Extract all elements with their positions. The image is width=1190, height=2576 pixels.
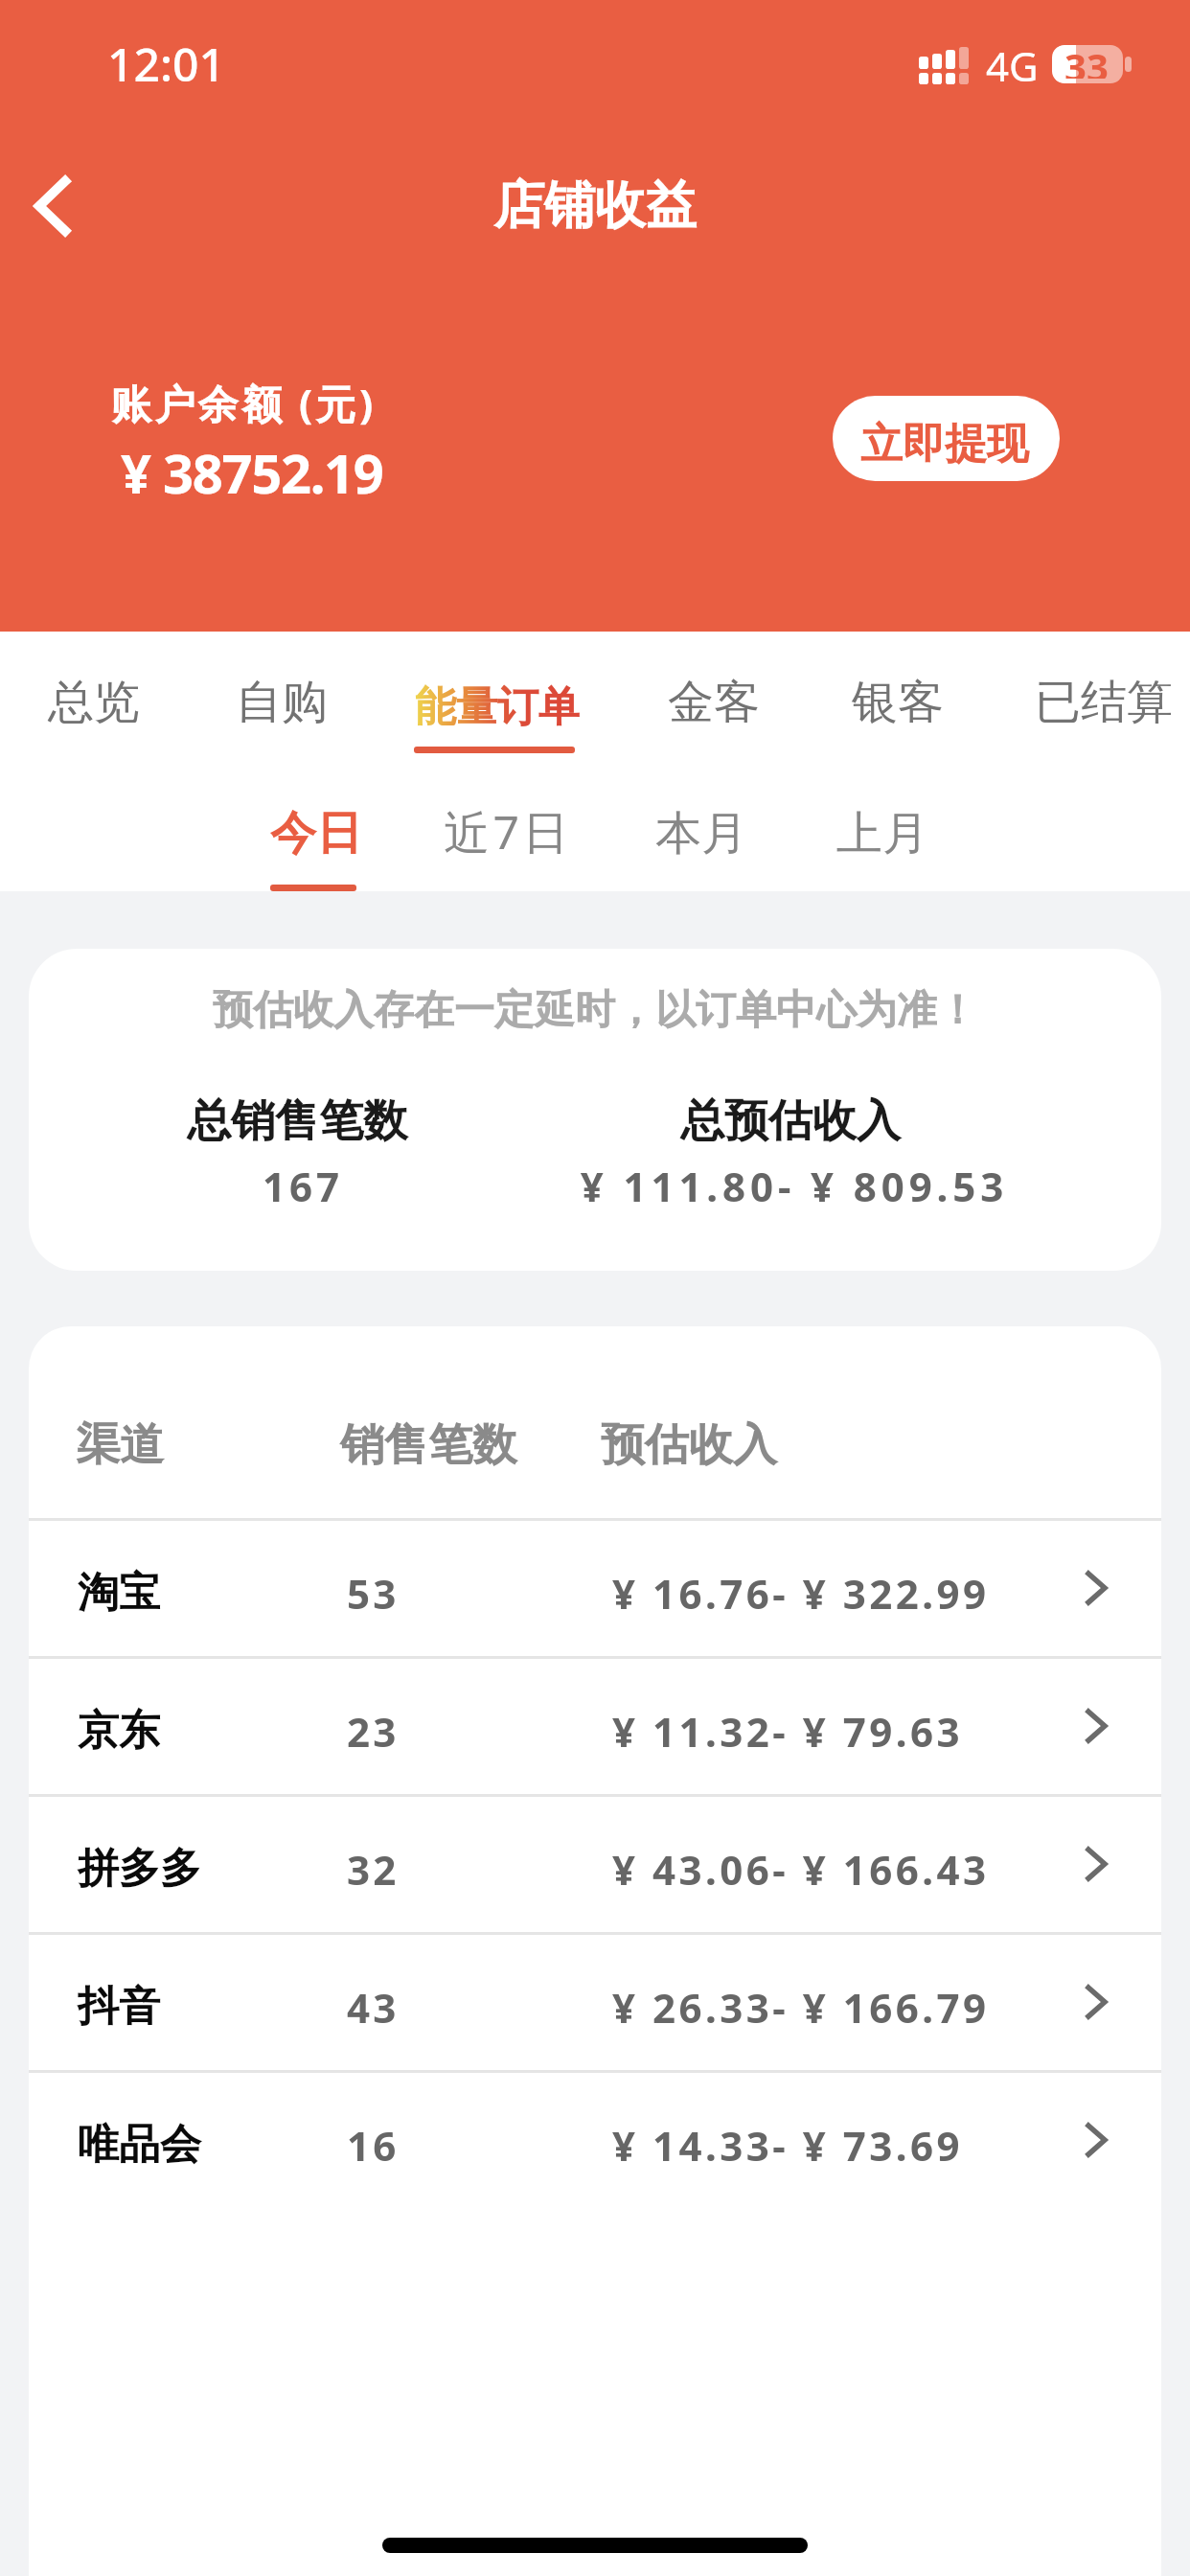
button[interactable]: 今日 <box>255 770 370 891</box>
staticText: ¥ 111.80- ¥ 809.53 <box>424 1159 1161 1213</box>
staticText: 京东 <box>78 1705 160 1757</box>
staticText: 12:01 <box>107 33 225 95</box>
button[interactable]: 本月 <box>640 770 751 891</box>
staticText: 店铺收益 <box>0 173 1190 238</box>
staticText: 上月 <box>836 805 928 862</box>
staticText: 33 <box>1064 45 1109 79</box>
staticText: 本月 <box>655 805 747 862</box>
staticText: 近7日 <box>444 800 572 863</box>
button[interactable]: 已结算 <box>1026 641 1176 761</box>
staticText: 53 <box>347 1566 400 1621</box>
staticText: 金客 <box>668 674 760 731</box>
button[interactable]: 京东 <box>29 1657 1161 1795</box>
staticText: 16 <box>347 2118 400 2173</box>
staticText: 已结算 <box>1035 674 1173 731</box>
button[interactable]: 抖音 <box>29 1933 1161 2071</box>
button[interactable]: 能量订单 <box>398 641 591 761</box>
staticText: 预估收入 <box>601 1417 777 1473</box>
staticText: 23 <box>347 1704 400 1759</box>
staticText: 立即提现 <box>860 418 1029 471</box>
staticText: 32 <box>347 1842 400 1897</box>
staticText: 唯品会 <box>78 2119 201 2171</box>
button[interactable]: 金客 <box>659 641 767 761</box>
staticText: 4G <box>986 38 1039 93</box>
staticText: 渠道 <box>76 1417 164 1473</box>
button[interactable]: 银客 <box>843 641 950 761</box>
button[interactable]: Back <box>6 160 98 252</box>
staticText: 淘宝 <box>78 1567 160 1619</box>
staticText: ¥ 14.33- ¥ 73.69 <box>612 2118 964 2173</box>
staticText: 账户余额 (元) <box>111 376 377 430</box>
staticText: 总销售笔数 <box>29 1093 565 1149</box>
staticText: 167 <box>29 1159 577 1213</box>
staticText: ¥ 38752.19 <box>121 436 383 509</box>
staticText: ¥ 43.06- ¥ 166.43 <box>612 1842 990 1897</box>
button[interactable]: 总览 <box>39 641 147 761</box>
staticText: 抖音 <box>78 1981 160 2033</box>
staticText: 能量订单 <box>415 681 580 733</box>
staticText: 总预估收入 <box>421 1093 1160 1149</box>
staticText: ¥ 11.32- ¥ 79.63 <box>612 1704 964 1759</box>
staticText: ¥ 26.33- ¥ 166.79 <box>612 1980 990 2035</box>
staticText: 预估收入存在一定延时，以订单中心为准！ <box>29 985 1161 1036</box>
button[interactable]: 上月 <box>821 770 932 891</box>
staticText: 43 <box>347 1980 400 2035</box>
button[interactable]: 拼多多 <box>29 1795 1161 1933</box>
staticText: 银客 <box>852 674 944 731</box>
button[interactable]: 立即提现 <box>833 396 1060 481</box>
staticText: 自购 <box>236 674 328 731</box>
staticText: 销售笔数 <box>340 1417 516 1473</box>
staticText: 今日 <box>270 805 362 862</box>
button[interactable]: 唯品会 <box>29 2071 1161 2209</box>
button[interactable]: 近7日 <box>428 770 570 891</box>
staticText: ¥ 16.76- ¥ 322.99 <box>612 1566 990 1621</box>
button[interactable]: 自购 <box>227 641 334 761</box>
staticText: 拼多多 <box>78 1843 201 1895</box>
staticText: 总览 <box>48 674 140 731</box>
button[interactable]: 淘宝 <box>29 1519 1161 1657</box>
